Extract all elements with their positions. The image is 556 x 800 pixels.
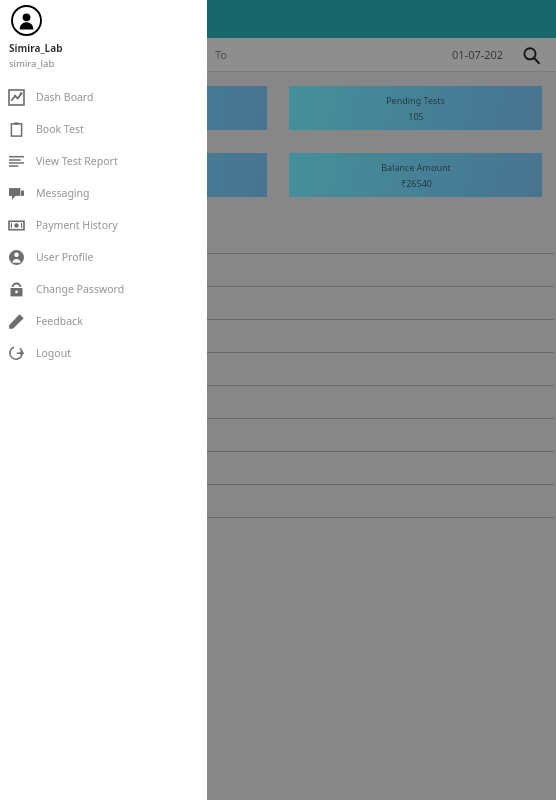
- button[interactable]: Dash Board: [0, 81, 207, 113]
- button[interactable]: [2, 287, 554, 320]
- staticText: Messaging: [36, 186, 90, 200]
- staticText: 01-07-2022: [12, 47, 70, 62]
- button[interactable]: [2, 221, 554, 254]
- button[interactable]: Payment History: [0, 209, 207, 241]
- staticText: Logout: [36, 346, 71, 360]
- staticText: View Test Report: [36, 154, 118, 168]
- button[interactable]: [2, 419, 554, 452]
- button[interactable]: Logout: [0, 337, 207, 369]
- button[interactable]: [2, 452, 554, 485]
- staticText: Simira_Lab: [9, 41, 63, 55]
- button[interactable]: 01-07-202: [261, 38, 504, 71]
- button[interactable]: [2, 386, 554, 419]
- button[interactable]: User Profile: [0, 241, 207, 273]
- button[interactable]: Pending Tests: [289, 86, 542, 130]
- button[interactable]: Balance Amount: [289, 153, 542, 197]
- staticText: Balance Amount: [381, 161, 451, 173]
- button[interactable]: [2, 353, 554, 386]
- button[interactable]: Paid Amount: [14, 153, 267, 197]
- button[interactable]: Feedback: [0, 305, 207, 337]
- button[interactable]: [2, 254, 554, 287]
- staticText: User Profile: [36, 250, 94, 264]
- button[interactable]: [2, 320, 554, 353]
- button[interactable]: Search: [516, 40, 546, 70]
- button[interactable]: View Test Report: [0, 145, 207, 177]
- staticText: 01-07-202: [452, 47, 504, 62]
- button[interactable]: [2, 485, 554, 518]
- staticText: Book Test: [36, 122, 84, 136]
- staticText: Dash Board: [36, 90, 94, 104]
- button[interactable]: To: [215, 38, 261, 71]
- staticText: Pending Tests: [386, 94, 445, 106]
- staticText: Payment History: [36, 218, 118, 232]
- staticText: simira_lab: [9, 57, 55, 70]
- staticText: ₹26540: [401, 177, 432, 189]
- staticText: Change Password: [36, 282, 125, 296]
- staticText: 105: [408, 110, 424, 122]
- staticText: To: [215, 47, 228, 62]
- button[interactable]: Total Tests: [14, 86, 267, 130]
- button[interactable]: Messaging: [0, 177, 207, 209]
- staticText: Paid Amount: [113, 161, 168, 173]
- staticText: Feedback: [36, 314, 83, 328]
- button[interactable]: Change Password: [0, 273, 207, 305]
- button[interactable]: 01-07-2022: [12, 38, 215, 71]
- button[interactable]: Book Test: [0, 113, 207, 145]
